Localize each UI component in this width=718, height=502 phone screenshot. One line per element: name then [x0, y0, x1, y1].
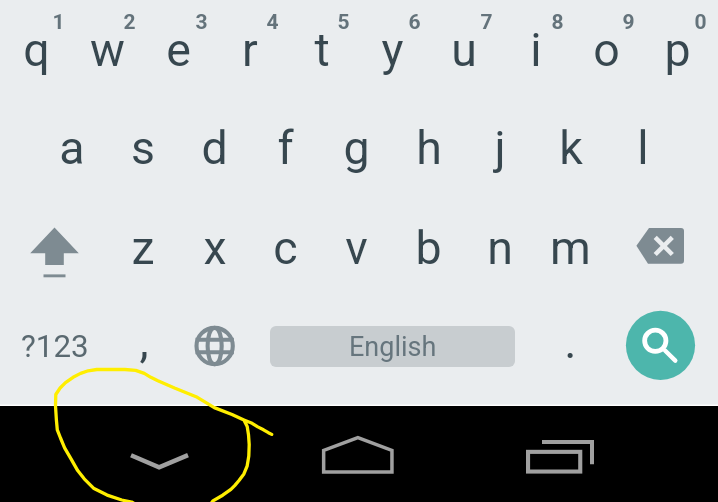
button[interactable]: v	[321, 203, 392, 293]
button[interactable]: i	[500, 5, 571, 95]
staticText: r	[242, 23, 258, 77]
button[interactable]: n	[464, 203, 535, 293]
button[interactable]: Home	[318, 425, 398, 485]
staticText: s	[131, 121, 155, 175]
staticText: z	[131, 221, 155, 275]
button[interactable]: d	[179, 103, 250, 193]
button[interactable]: Shift	[1, 203, 108, 303]
button[interactable]: s	[107, 103, 178, 193]
staticText: k	[559, 121, 583, 175]
button[interactable]: ,	[108, 296, 179, 386]
button[interactable]: x	[179, 203, 250, 293]
staticText: d	[201, 121, 228, 175]
staticText: p	[664, 23, 691, 77]
button[interactable]: Recent apps	[522, 425, 602, 485]
staticText: 6	[408, 10, 421, 35]
staticText: i	[530, 23, 542, 77]
staticText: 4	[266, 10, 279, 35]
staticText: e	[166, 23, 191, 77]
button[interactable]: f	[250, 103, 321, 193]
staticText: q	[23, 23, 50, 77]
staticText: j	[494, 121, 506, 175]
staticText: f	[277, 121, 294, 175]
button[interactable]: u	[428, 5, 499, 95]
staticText: m	[550, 221, 591, 275]
button[interactable]: ?123	[1, 301, 108, 391]
staticText: English	[349, 331, 437, 363]
button[interactable]: j	[464, 103, 535, 193]
button[interactable]: y	[357, 5, 428, 95]
staticText: c	[273, 221, 298, 275]
button[interactable]: k	[535, 103, 606, 193]
button[interactable]: Search	[607, 302, 714, 392]
staticText: h	[416, 121, 442, 175]
staticText: b	[415, 221, 442, 275]
staticText: 2	[123, 10, 136, 35]
staticText: 8	[551, 10, 564, 35]
staticText: o	[593, 23, 620, 77]
button[interactable]: h	[393, 103, 464, 193]
button[interactable]: p	[642, 5, 713, 95]
staticText: g	[343, 121, 370, 175]
staticText: y	[381, 23, 404, 77]
button[interactable]: m	[535, 203, 606, 293]
button[interactable]: z	[107, 203, 178, 293]
staticText: a	[59, 121, 85, 175]
button[interactable]: a	[36, 103, 107, 193]
staticText: v	[345, 221, 368, 275]
button[interactable]: q	[1, 5, 72, 95]
staticText: ?123	[21, 328, 89, 365]
button[interactable]: o	[571, 5, 642, 95]
staticText: 7	[480, 10, 493, 35]
staticText: .	[564, 315, 577, 369]
staticText: w	[90, 23, 125, 77]
button[interactable]: l	[607, 103, 678, 193]
button[interactable]: r	[214, 5, 285, 95]
button[interactable]: Change language	[179, 301, 250, 391]
staticText: l	[637, 121, 649, 175]
staticText: t	[314, 23, 330, 77]
button[interactable]: Backspace	[630, 220, 692, 272]
staticText: x	[203, 221, 227, 275]
button[interactable]: English	[250, 306, 535, 386]
button[interactable]: Back	[120, 425, 200, 485]
staticText: 9	[622, 10, 635, 35]
staticText: n	[487, 221, 513, 275]
button[interactable]: g	[321, 103, 392, 193]
staticText: ,	[139, 314, 149, 368]
button[interactable]: e	[143, 5, 214, 95]
button[interactable]: c	[250, 203, 321, 293]
staticText: 5	[337, 10, 350, 35]
staticText: 1	[52, 10, 65, 35]
staticText: 0	[694, 10, 707, 35]
staticText: u	[451, 23, 477, 77]
button[interactable]: w	[72, 5, 143, 95]
staticText: 3	[195, 10, 208, 35]
button[interactable]: .	[535, 297, 606, 387]
button[interactable]: t	[286, 5, 357, 95]
button[interactable]: b	[393, 203, 464, 293]
